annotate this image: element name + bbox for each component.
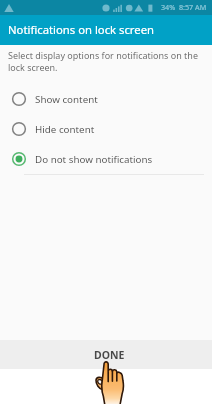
staticText: Hide content bbox=[35, 123, 95, 136]
staticText: DONE bbox=[94, 348, 125, 362]
button[interactable]: Show content bbox=[0, 84, 212, 114]
staticText: 34% 8:57 AM bbox=[161, 2, 207, 12]
staticText: Select display options for notifications… bbox=[8, 49, 200, 73]
button[interactable]: Hide content bbox=[0, 114, 212, 144]
button[interactable]: DONE bbox=[0, 340, 212, 369]
button[interactable]: Do not show notifications bbox=[0, 144, 212, 174]
staticText: Show content bbox=[35, 93, 98, 106]
staticText: Notifications on lock screen bbox=[8, 22, 155, 37]
staticText: Do not show notifications bbox=[35, 153, 153, 166]
